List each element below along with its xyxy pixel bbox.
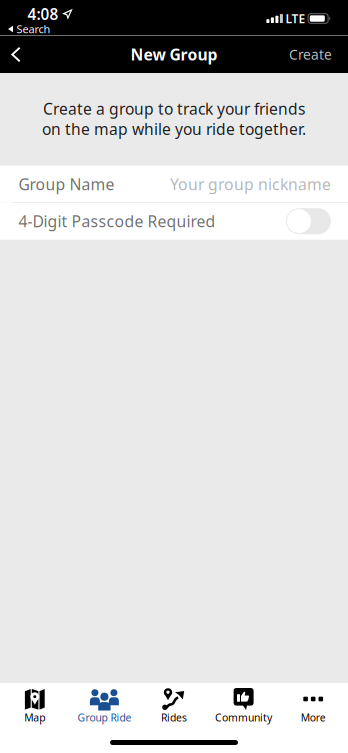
staticText: Community	[215, 710, 272, 725]
staticText: Search	[16, 22, 50, 36]
button[interactable]: Community	[209, 683, 278, 729]
staticText: LTE	[285, 10, 305, 27]
button[interactable]: More	[278, 683, 348, 729]
staticText: 4:08	[27, 4, 58, 24]
staticText: on the map while you ride together.	[42, 118, 306, 140]
button[interactable]: Create	[273, 36, 348, 73]
staticText: Group Name	[19, 173, 115, 195]
button[interactable]: Map	[0, 683, 70, 729]
staticText: Create a group to track your friends	[43, 98, 305, 119]
staticText: Your group nickname	[170, 173, 331, 195]
button[interactable]: 4-Digit Passcode Required	[286, 208, 331, 234]
button[interactable]: Search	[0, 0, 50, 36]
staticText: New Group	[130, 44, 217, 65]
staticText: Group Ride	[77, 710, 131, 725]
staticText: Map	[24, 710, 45, 725]
staticText: Rides	[161, 710, 187, 725]
button[interactable]: Back	[0, 38, 36, 71]
staticText: 4-Digit Passcode Required	[19, 210, 216, 232]
button[interactable]: Rides	[139, 683, 209, 729]
button[interactable]: Group Ride	[70, 683, 139, 729]
staticText: More	[301, 710, 326, 725]
staticText: Create	[289, 45, 332, 64]
